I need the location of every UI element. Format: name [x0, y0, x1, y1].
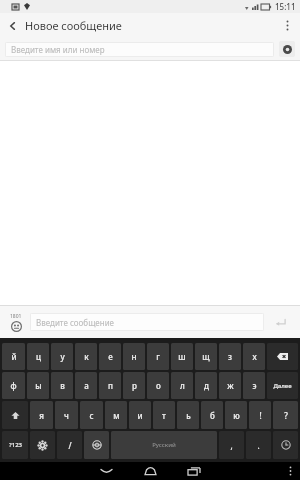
button[interactable]: т: [153, 401, 175, 429]
staticText: у: [60, 351, 65, 362]
button[interactable]: Shift: [2, 401, 28, 429]
button[interactable]: я: [30, 401, 53, 429]
button[interactable]: Enter: [273, 431, 298, 459]
staticText: р: [132, 380, 137, 391]
button[interactable]: ы: [27, 372, 49, 399]
button[interactable]: к: [75, 343, 97, 370]
button[interactable]: Keyboard settings: [30, 431, 55, 459]
staticText: ж: [227, 380, 234, 391]
button[interactable]: Change language: [84, 431, 109, 459]
staticText: ю: [233, 410, 240, 421]
staticText: 1801: [10, 313, 22, 320]
button[interactable]: й: [2, 343, 25, 370]
button[interactable]: Введите имя или номер: [5, 42, 274, 57]
staticText: ы: [35, 380, 42, 391]
button[interactable]: Home: [128, 462, 172, 480]
button[interactable]: More options: [280, 462, 300, 480]
button[interactable]: !: [249, 401, 271, 429]
button[interactable]: ц: [27, 343, 49, 370]
button[interactable]: з: [219, 343, 241, 370]
button[interactable]: и: [129, 401, 151, 429]
button[interactable]: р: [123, 372, 145, 399]
button[interactable]: а: [75, 372, 97, 399]
staticText: /: [68, 440, 72, 451]
button[interactable]: Далее: [267, 372, 298, 399]
button[interactable]: Backspace: [267, 343, 298, 370]
button[interactable]: ю: [225, 401, 247, 429]
staticText: э: [252, 380, 257, 391]
button[interactable]: е: [99, 343, 121, 370]
button[interactable]: н: [123, 343, 145, 370]
staticText: п: [108, 380, 113, 391]
button[interactable]: м: [105, 401, 127, 429]
button[interactable]: п: [99, 372, 121, 399]
button[interactable]: у: [51, 343, 73, 370]
staticText: 15:11: [275, 1, 296, 12]
staticText: в: [60, 380, 65, 391]
button[interactable]: Add recipient: [279, 41, 295, 57]
staticText: ц: [36, 351, 41, 362]
staticText: ф: [10, 380, 17, 391]
staticText: л: [180, 380, 185, 391]
button[interactable]: г: [147, 343, 169, 370]
staticText: ?123: [9, 441, 22, 449]
button[interactable]: х: [243, 343, 265, 370]
button[interactable]: Back: [84, 462, 128, 480]
staticText: ч: [64, 410, 69, 421]
button[interactable]: ш: [171, 343, 193, 370]
button[interactable]: ч: [55, 401, 78, 429]
staticText: г: [156, 351, 160, 362]
staticText: Введите имя или номер: [11, 44, 105, 55]
staticText: й: [11, 351, 17, 362]
staticText: ь: [186, 410, 191, 421]
staticText: д: [204, 380, 209, 391]
button[interactable]: о: [147, 372, 169, 399]
button[interactable]: э: [243, 372, 265, 399]
staticText: и: [137, 410, 143, 421]
button[interactable]: Введите сообщение: [30, 313, 264, 331]
staticText: я: [39, 410, 44, 421]
button[interactable]: щ: [195, 343, 217, 370]
button[interactable]: Русский: [111, 431, 217, 459]
button[interactable]: д: [195, 372, 217, 399]
button[interactable]: .: [246, 431, 271, 459]
button[interactable]: ь: [177, 401, 199, 429]
staticText: ,: [230, 440, 233, 451]
button[interactable]: /: [57, 431, 82, 459]
button[interactable]: ж: [219, 372, 241, 399]
staticText: т: [162, 410, 166, 421]
button[interactable]: с: [80, 401, 103, 429]
staticText: ?: [284, 410, 288, 421]
staticText: Русский: [152, 441, 176, 449]
staticText: х: [252, 351, 257, 362]
staticText: Введите сообщение: [36, 317, 115, 328]
staticText: Новое сообщение: [25, 18, 122, 33]
button[interactable]: More options: [275, 13, 300, 38]
button[interactable]: Send: [264, 307, 296, 337]
staticText: м: [113, 410, 120, 421]
button[interactable]: ?: [273, 401, 298, 429]
staticText: ш: [178, 351, 186, 362]
staticText: щ: [202, 351, 210, 362]
button[interactable]: ,: [219, 431, 244, 459]
staticText: з: [228, 351, 232, 362]
staticText: Далее: [273, 382, 292, 390]
staticText: н: [131, 351, 137, 362]
button[interactable]: ?123: [2, 431, 28, 459]
staticText: !: [259, 410, 262, 421]
staticText: с: [89, 410, 94, 421]
button[interactable]: л: [171, 372, 193, 399]
staticText: а: [84, 380, 89, 391]
button[interactable]: б: [201, 401, 223, 429]
button[interactable]: Back: [0, 13, 25, 38]
button[interactable]: Recent apps: [172, 462, 216, 480]
button[interactable]: ф: [2, 372, 25, 399]
staticText: е: [108, 351, 113, 362]
staticText: .: [257, 440, 260, 451]
staticText: б: [210, 410, 215, 421]
staticText: к: [84, 351, 89, 362]
button[interactable]: Emoji: [4, 313, 28, 332]
button[interactable]: в: [51, 372, 73, 399]
staticText: о: [156, 380, 161, 391]
